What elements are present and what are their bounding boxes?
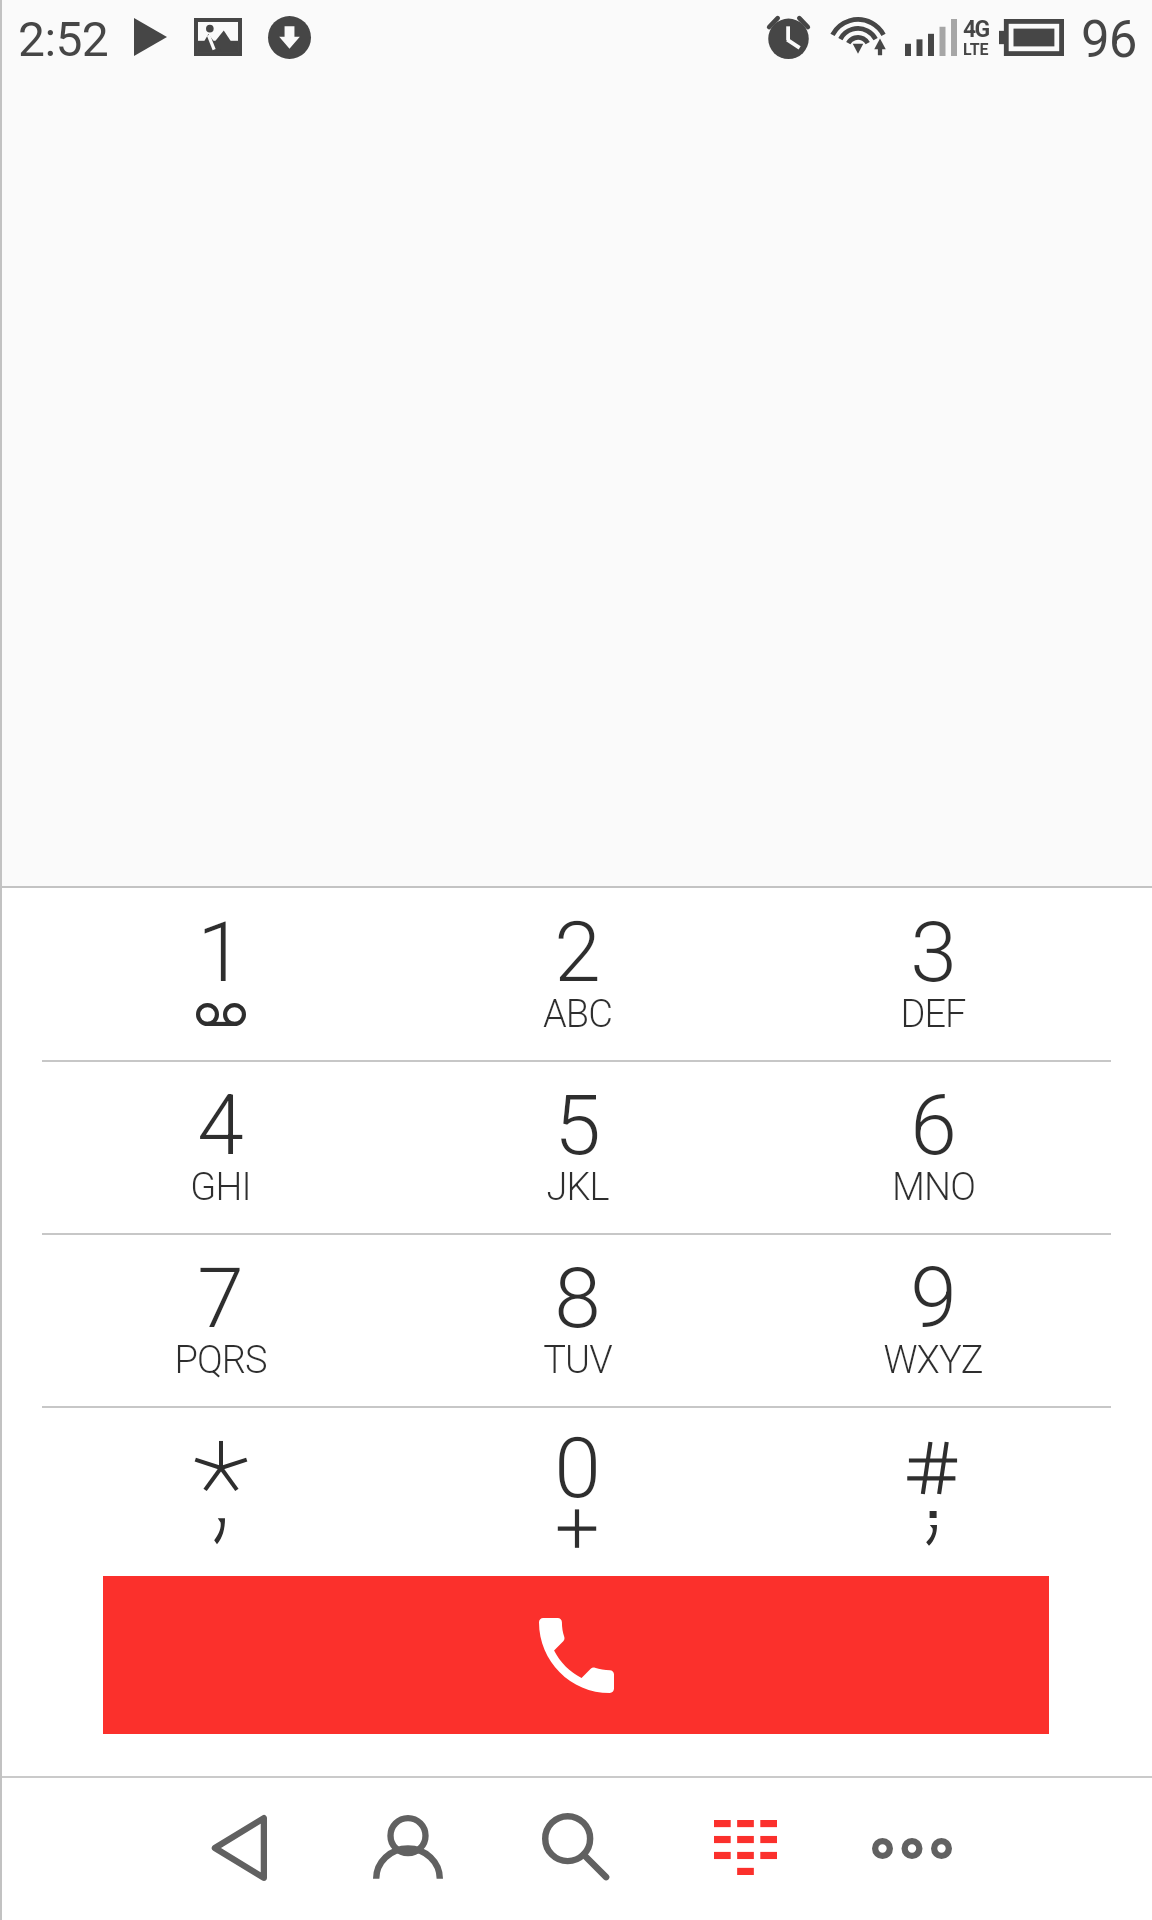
staticText: WXYZ	[883, 1338, 983, 1383]
staticText: MNO	[892, 1165, 975, 1210]
button[interactable]: Contacts	[326, 1778, 490, 1920]
button[interactable]: Call	[103, 1576, 1049, 1734]
staticText: 2	[554, 903, 601, 1001]
staticText: LTE	[963, 40, 989, 59]
button[interactable]: Dialpad	[663, 1778, 827, 1920]
button[interactable]: 7	[42, 1234, 399, 1407]
button[interactable]: More options	[830, 1778, 994, 1920]
button[interactable]	[42, 1407, 399, 1580]
button[interactable]: Search	[494, 1778, 658, 1920]
staticText: 8	[554, 1249, 601, 1347]
button[interactable]: 5	[399, 1061, 755, 1234]
staticText: 9	[910, 1249, 957, 1347]
staticText: 5	[554, 1076, 601, 1174]
button[interactable]: 3	[755, 888, 1111, 1061]
button[interactable]: 8	[399, 1234, 755, 1407]
staticText: 96	[1081, 10, 1137, 70]
staticText: 4G	[963, 16, 989, 43]
staticText: GHI	[190, 1165, 251, 1210]
staticText: 4	[197, 1076, 244, 1174]
staticText: 3	[910, 903, 957, 1001]
staticText: 6	[910, 1076, 957, 1174]
staticText: ABC	[543, 992, 612, 1037]
button[interactable]: 6	[755, 1061, 1111, 1234]
button[interactable]	[755, 1407, 1111, 1580]
staticText: 2:52	[18, 11, 109, 67]
staticText: TUV	[543, 1338, 612, 1383]
button[interactable]: 4	[42, 1061, 399, 1234]
staticText: 7	[197, 1249, 244, 1347]
staticText: JKL	[546, 1165, 609, 1210]
staticText: PQRS	[174, 1338, 267, 1383]
staticText: 1	[197, 903, 244, 1001]
button[interactable]: 0	[399, 1407, 755, 1580]
button[interactable]: 2	[399, 888, 755, 1061]
staticText: 0	[554, 1419, 601, 1517]
button[interactable]: Back	[157, 1778, 321, 1920]
button[interactable]: 9	[755, 1234, 1111, 1407]
staticText: DEF	[900, 992, 966, 1037]
button[interactable]: 1	[42, 888, 399, 1061]
